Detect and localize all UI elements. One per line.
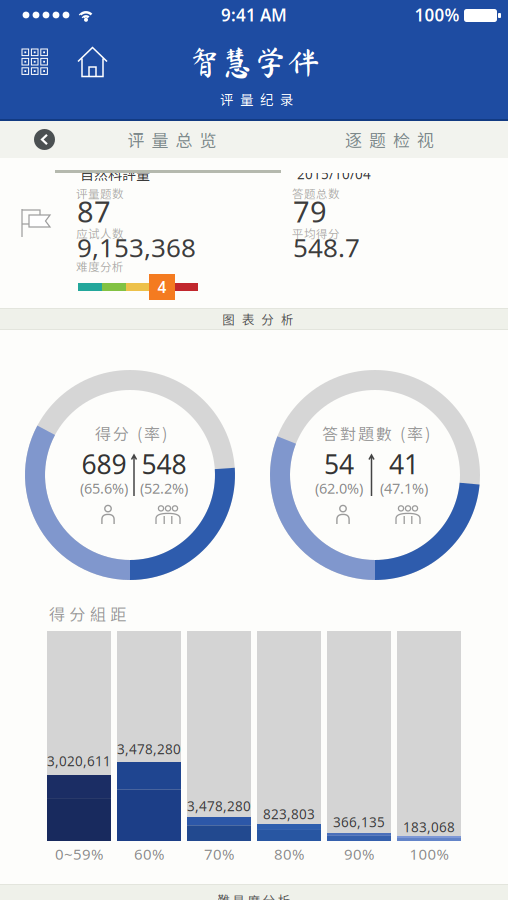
staticText: 100% [414, 4, 459, 26]
button[interactable]: 功能選單 [21, 48, 49, 76]
staticText: 自然科評量 [80, 164, 150, 184]
staticText: (47.1%) [380, 478, 428, 498]
staticText: 评量题数 [76, 185, 124, 202]
staticText: 54 [324, 446, 354, 482]
button[interactable]: 返回 [34, 129, 55, 150]
staticText: 41 [389, 446, 419, 482]
staticText: 823,803 [263, 805, 315, 823]
staticText: (65.6%) [80, 478, 128, 498]
staticText: (62.0%) [315, 478, 363, 498]
staticText: 79 [293, 192, 327, 230]
button[interactable]: 逐题检视 [276, 121, 503, 158]
staticText: 60% [134, 844, 164, 864]
staticText: 评量总览 [127, 127, 216, 152]
staticText: 4 [157, 277, 166, 297]
button[interactable]: 首頁 [77, 46, 108, 78]
staticText: 智慧学伴 [188, 45, 320, 78]
staticText: 得分 (率) [95, 421, 167, 445]
staticText: 70% [204, 844, 234, 864]
staticText: (52.2%) [140, 478, 188, 498]
staticText: 3,478,280 [187, 797, 251, 815]
staticText: 90% [344, 844, 374, 864]
staticText: 難易度分析 [217, 891, 290, 900]
staticText: 平均得分 [292, 225, 340, 242]
staticText: 689 [81, 446, 126, 482]
staticText: 评量纪录 [220, 89, 294, 109]
staticText: 图表分析 [222, 310, 294, 328]
staticText: 548 [141, 446, 186, 482]
staticText: 3,478,280 [117, 740, 181, 758]
staticText: 应试人数 [76, 225, 124, 242]
staticText: 100% [409, 844, 448, 864]
staticText: 9,153,368 [77, 230, 196, 264]
staticText: 答题总数 [292, 185, 340, 202]
staticText: 3,020,611 [47, 752, 111, 770]
button[interactable]: 评量总览 [59, 121, 285, 158]
staticText: 183,068 [403, 818, 455, 836]
staticText: 答對題數 (率) [322, 421, 430, 445]
staticText: 366,135 [333, 813, 385, 831]
staticText: 难度分析 [76, 258, 124, 275]
staticText: 548.7 [293, 230, 360, 264]
staticText: 得分組距 [49, 602, 126, 625]
staticText: 逐题检视 [345, 127, 434, 152]
staticText: 9:41 AM [221, 4, 287, 26]
staticText: 0~59% [55, 844, 103, 864]
staticText: 80% [274, 844, 304, 864]
staticText: 87 [77, 192, 111, 230]
staticText: 2015/10/04 [297, 165, 371, 183]
